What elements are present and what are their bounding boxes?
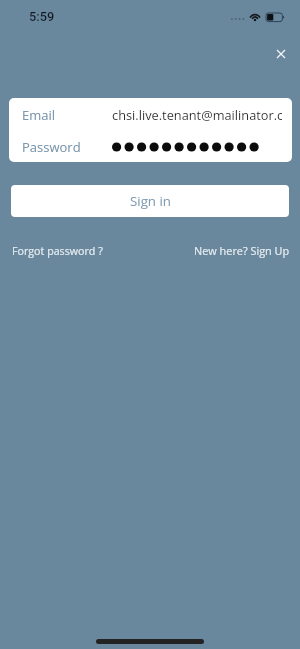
button[interactable]: Email [9,98,292,130]
staticText: Email [22,106,56,124]
staticText: New here? Sign Up [194,243,290,258]
button[interactable]: New here? Sign Up [194,243,290,258]
staticText: Sign in [130,192,171,210]
staticText: Forgot password ? [12,244,103,259]
button[interactable]: Close [267,40,295,68]
other: Password, 12 characters hidden [112,141,262,153]
other: Wi-Fi [249,12,261,21]
staticText: Password [22,138,81,156]
button[interactable]: Password [9,130,292,162]
button[interactable]: Sign in [11,185,289,217]
button[interactable]: Forgot password ? [12,244,103,259]
other: Cellular signal [231,18,245,22]
other: Battery [266,13,286,24]
staticText: chsi.live.tenant@mailinator.com [112,106,282,123]
staticText: 5:59 [29,9,55,24]
